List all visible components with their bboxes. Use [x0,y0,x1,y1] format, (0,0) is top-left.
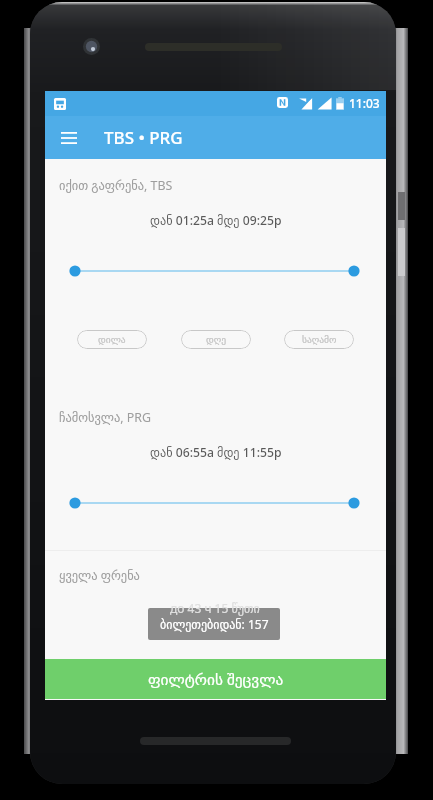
staticText: до 43 ч 15 წუთი [170,600,260,616]
staticText: დან 01:25a მდე 09:25p [150,212,282,229]
staticText: ფილტრის შეცვლა [148,669,284,690]
button[interactable]: ფილტრის შეცვლა [45,659,386,699]
staticText: დღე [206,334,227,345]
staticText: TBS • PRG [104,126,183,149]
staticText: ჩამოსვლა, PRG [59,409,152,426]
button[interactable]: დილა [77,330,147,349]
staticText: დან 06:55a მდე 11:55p [150,444,282,461]
staticText: ყველა ფრენა [59,567,140,584]
staticText: 11:03 [349,95,380,111]
staticText: ბილეთებიდან: 157 [160,616,269,632]
staticText: იქით გაფრენა, TBS [59,177,173,194]
staticText: დილა [98,334,126,345]
button[interactable]: Menu [48,117,90,159]
button[interactable]: დღე [181,330,251,349]
button[interactable]: საღამო [284,330,354,349]
staticText: საღამო [302,334,337,345]
